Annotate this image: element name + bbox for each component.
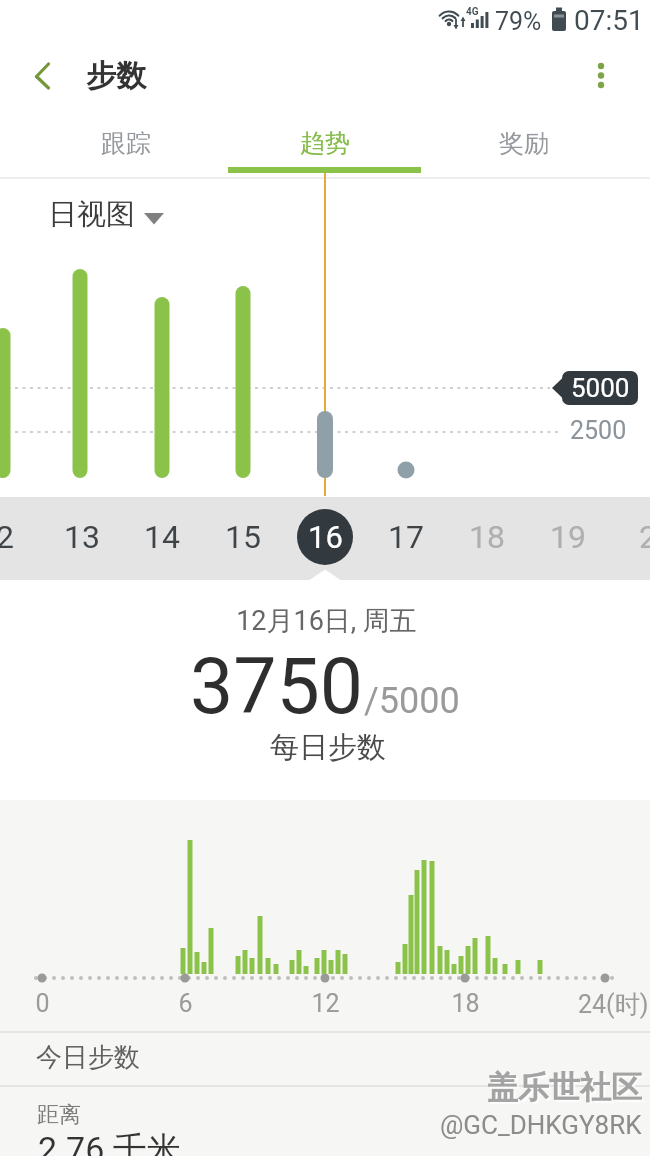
button[interactable]	[284, 497, 365, 580]
button[interactable]	[608, 497, 650, 580]
button[interactable]	[446, 497, 527, 580]
staticText: 2	[639, 518, 650, 556]
staticText: 07:51	[574, 4, 644, 37]
button[interactable]	[527, 497, 608, 580]
staticText: 16	[308, 519, 343, 555]
button[interactable]: 奖励	[444, 112, 604, 174]
staticText: 奖励	[499, 128, 549, 159]
staticText: 趋势	[300, 128, 350, 159]
button[interactable]	[122, 497, 203, 580]
staticText: 12月16日, 周五	[236, 604, 417, 638]
button[interactable]	[41, 497, 122, 580]
staticText: 日视图	[48, 196, 135, 233]
staticText: @GC_DHKGY8RK	[440, 1110, 642, 1140]
button[interactable]: 跟踪	[46, 112, 206, 174]
staticText: 跟踪	[101, 128, 151, 159]
staticText: 今日步数	[36, 1041, 140, 1074]
staticText: 12	[311, 989, 340, 1018]
button[interactable]: 今日步数	[0, 1033, 650, 1086]
staticText: 13	[64, 518, 100, 556]
staticText: /5000	[364, 680, 460, 722]
button[interactable]: 日视图	[48, 196, 178, 236]
staticText: 2	[0, 518, 14, 556]
staticText: 19	[550, 518, 586, 556]
staticText: 5000	[571, 373, 630, 403]
button[interactable]	[16, 48, 72, 104]
button[interactable]: 趋势	[245, 112, 405, 174]
staticText: 4G	[466, 6, 479, 18]
staticText: 6	[178, 989, 193, 1018]
staticText: 2.76 千米	[38, 1128, 181, 1156]
staticText: 79%	[495, 7, 542, 36]
staticText: 17	[388, 518, 424, 556]
staticText: 18	[451, 989, 480, 1018]
staticText: 3750	[190, 642, 364, 732]
staticText: 2500	[570, 416, 627, 445]
staticText: 每日步数	[270, 729, 386, 766]
staticText: 步数	[86, 57, 146, 95]
button[interactable]	[203, 497, 284, 580]
staticText: 14	[144, 518, 180, 556]
staticText: 距离	[37, 1101, 81, 1129]
staticText: 盖乐世社区	[487, 1068, 642, 1107]
staticText: 0	[35, 989, 50, 1018]
button[interactable]	[365, 497, 446, 580]
staticText: 24(时)	[578, 989, 649, 1020]
button[interactable]	[576, 48, 632, 104]
staticText: 18	[469, 518, 505, 556]
staticText: 15	[225, 518, 261, 556]
